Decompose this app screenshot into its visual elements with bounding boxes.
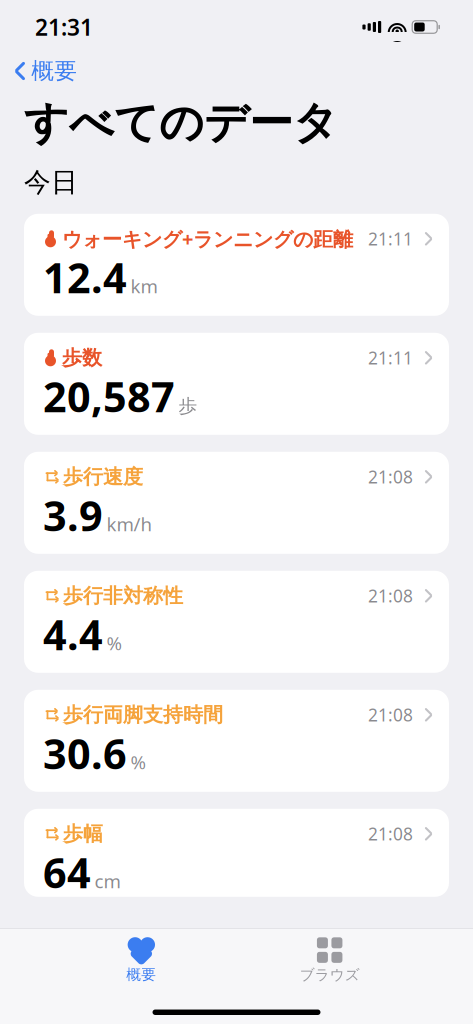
staticText: % xyxy=(106,631,122,655)
staticText: 12.4 xyxy=(43,250,127,305)
staticText: 歩行速度 xyxy=(63,464,143,489)
staticText: 歩幅 xyxy=(63,821,103,846)
staticText: 21:08 xyxy=(368,703,413,726)
staticText: 4.4 xyxy=(43,607,103,662)
button[interactable]: 歩幅 xyxy=(24,809,449,897)
staticText: 歩数 xyxy=(62,345,102,370)
button[interactable]: ブラウズ xyxy=(275,936,385,986)
staticText: 21:08 xyxy=(368,465,413,488)
staticText: cm xyxy=(94,869,120,893)
staticText: 21:08 xyxy=(368,584,413,607)
staticText: 今日 xyxy=(24,166,78,199)
staticText: ブラウズ xyxy=(300,966,360,984)
staticText: 20,587 xyxy=(43,369,175,424)
staticText: 21:11 xyxy=(368,227,413,250)
button[interactable]: ウォーキング+ランニングの距離 xyxy=(24,214,449,316)
button[interactable]: 概要 xyxy=(0,54,87,88)
staticText: 歩行非対称性 xyxy=(63,583,183,608)
button[interactable]: 概要 xyxy=(86,936,196,986)
staticText: km xyxy=(130,274,157,298)
button[interactable]: 歩行非対称性 xyxy=(24,571,449,673)
staticText: % xyxy=(130,750,146,774)
staticText: km/h xyxy=(106,512,152,536)
staticText: 3.9 xyxy=(43,488,103,543)
staticText: 概要 xyxy=(126,966,156,984)
staticText: 21:11 xyxy=(368,346,413,369)
button[interactable]: 歩数 xyxy=(24,333,449,435)
button[interactable]: 歩行速度 xyxy=(24,452,449,554)
staticText: 21:08 xyxy=(368,822,413,845)
staticText: 概要 xyxy=(31,57,77,85)
staticText: ウォーキング+ランニングの距離 xyxy=(62,225,353,252)
button[interactable]: 歩行両脚支持時間 xyxy=(24,690,449,792)
staticText: 歩 xyxy=(178,395,197,417)
staticText: すべてのデータ xyxy=(24,96,338,150)
staticText: 21:31 xyxy=(35,12,93,42)
staticText: 64 xyxy=(43,845,91,900)
staticText: 30.6 xyxy=(43,726,127,781)
staticText: 歩行両脚支持時間 xyxy=(63,702,223,727)
